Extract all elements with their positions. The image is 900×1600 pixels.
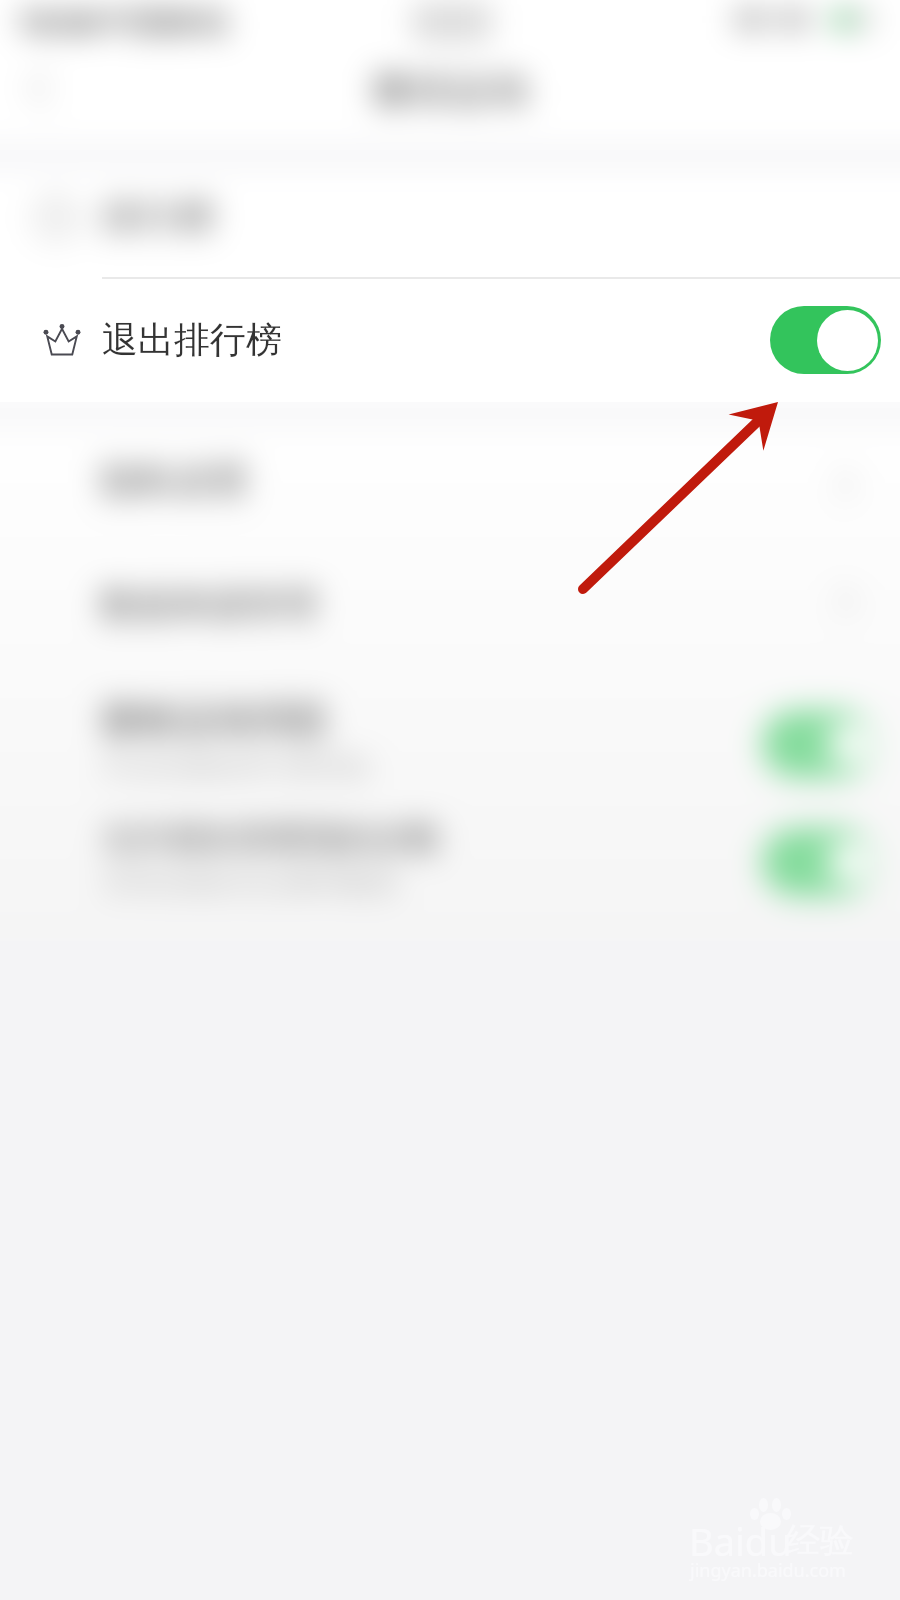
staticText: 微信运动 xyxy=(372,65,528,109)
staticText: 18:06 xyxy=(16,0,98,44)
staticText: 开启后接收排行榜消息 xyxy=(101,750,371,784)
staticText: 接收运动消息 xyxy=(101,695,329,743)
button[interactable]: 接收运动消息 xyxy=(0,662,900,800)
staticText: 退出排行榜 xyxy=(102,317,282,362)
staticText: 数据来源管理 xyxy=(101,582,317,627)
staticText: 隐私设置 xyxy=(101,457,249,504)
staticText: 中国移动 xyxy=(100,2,228,42)
button[interactable]: 排行榜 xyxy=(0,167,900,277)
button[interactable]: Receive sport messages xyxy=(762,710,873,778)
button[interactable]: 数据来源管理 xyxy=(0,545,900,662)
button[interactable]: 允许朋友查看我的步数 xyxy=(0,800,900,940)
staticText: 允许朋友查看我的步数 xyxy=(101,817,441,860)
button[interactable]: Share my steps xyxy=(762,828,873,896)
staticText: 关闭后朋友无法看到数据 xyxy=(101,866,398,900)
button[interactable]: 退出排行榜 xyxy=(0,277,900,402)
button[interactable]: Quit leaderboard xyxy=(770,306,881,374)
button[interactable]: 隐私设置 xyxy=(0,423,900,545)
staticText: 排行榜 xyxy=(101,193,215,241)
